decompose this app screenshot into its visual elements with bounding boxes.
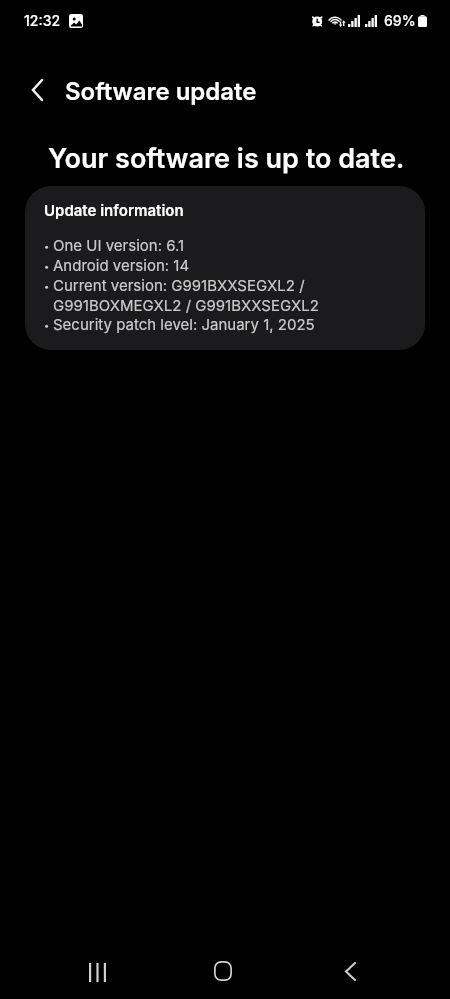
button[interactable]: Navigate up — [15, 68, 59, 112]
staticText: Software update — [65, 77, 257, 106]
staticText: Security patch level: January 1, 2025 — [53, 315, 315, 333]
button[interactable]: Update information — [25, 186, 425, 350]
staticText: Update information — [44, 201, 184, 219]
button[interactable]: Recent apps — [73, 948, 121, 996]
staticText: Current version: G991BXXSEGXL2 / G991BOX… — [53, 276, 319, 315]
staticText: 12:32 — [24, 12, 61, 29]
button[interactable]: Home — [199, 947, 247, 995]
staticText: One UI version: 6.1 — [53, 236, 185, 254]
staticText: Your software is up to date. — [48, 142, 405, 175]
staticText: Android version: 14 — [53, 256, 190, 274]
button[interactable]: Back — [326, 947, 374, 995]
staticText: 69% — [384, 12, 416, 29]
